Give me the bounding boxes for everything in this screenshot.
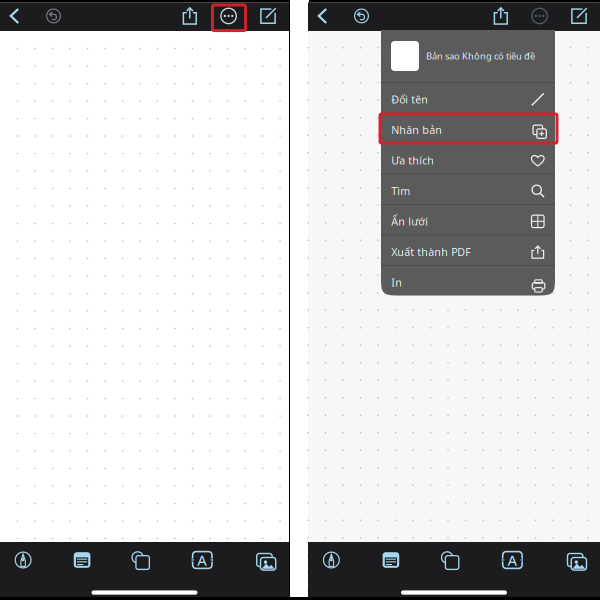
staticText: Tìm (391, 184, 410, 198)
button[interactable]: Draw (6, 543, 40, 577)
staticText: Xuất thành PDF (391, 245, 471, 259)
button[interactable]: In (381, 266, 555, 295)
button[interactable]: Photos (247, 543, 281, 577)
staticText: Bản sao Không có tiêu đề (426, 50, 535, 62)
button[interactable]: Đổi tên (381, 83, 555, 112)
button[interactable]: Back (0, 2, 30, 30)
staticText: In (391, 275, 402, 289)
button[interactable]: Notes (65, 543, 99, 577)
button[interactable]: Ưa thích (381, 144, 555, 173)
staticText: A (197, 550, 207, 570)
button[interactable]: Notes (374, 543, 408, 577)
button[interactable]: More (214, 2, 244, 30)
button[interactable]: Tìm (381, 174, 555, 204)
button[interactable]: Text (185, 543, 219, 577)
button[interactable]: Nhân bản (381, 113, 555, 143)
button[interactable]: Draw (314, 543, 348, 577)
button[interactable]: Photos (558, 543, 592, 577)
staticText: A (507, 550, 517, 570)
button[interactable]: Shapes (123, 543, 157, 577)
button[interactable]: Compose (564, 2, 594, 30)
staticText: Ưa thích (391, 153, 434, 167)
button[interactable]: Undo (38, 2, 68, 30)
button[interactable]: Ẩn lưới (381, 205, 555, 234)
button[interactable]: Undo (346, 2, 376, 30)
button[interactable]: Text (495, 543, 529, 577)
button[interactable]: Back (308, 2, 338, 30)
button[interactable]: More (525, 2, 555, 30)
button[interactable]: Xuất thành PDF (381, 235, 555, 265)
button[interactable]: Shapes (433, 543, 467, 577)
button[interactable]: Share (486, 2, 516, 30)
staticText: Nhân bản (391, 123, 442, 137)
staticText: Đổi tên (391, 92, 428, 106)
button[interactable]: Share (175, 2, 205, 30)
button[interactable]: Compose (253, 2, 283, 30)
staticText: Ẩn lưới (391, 214, 428, 228)
